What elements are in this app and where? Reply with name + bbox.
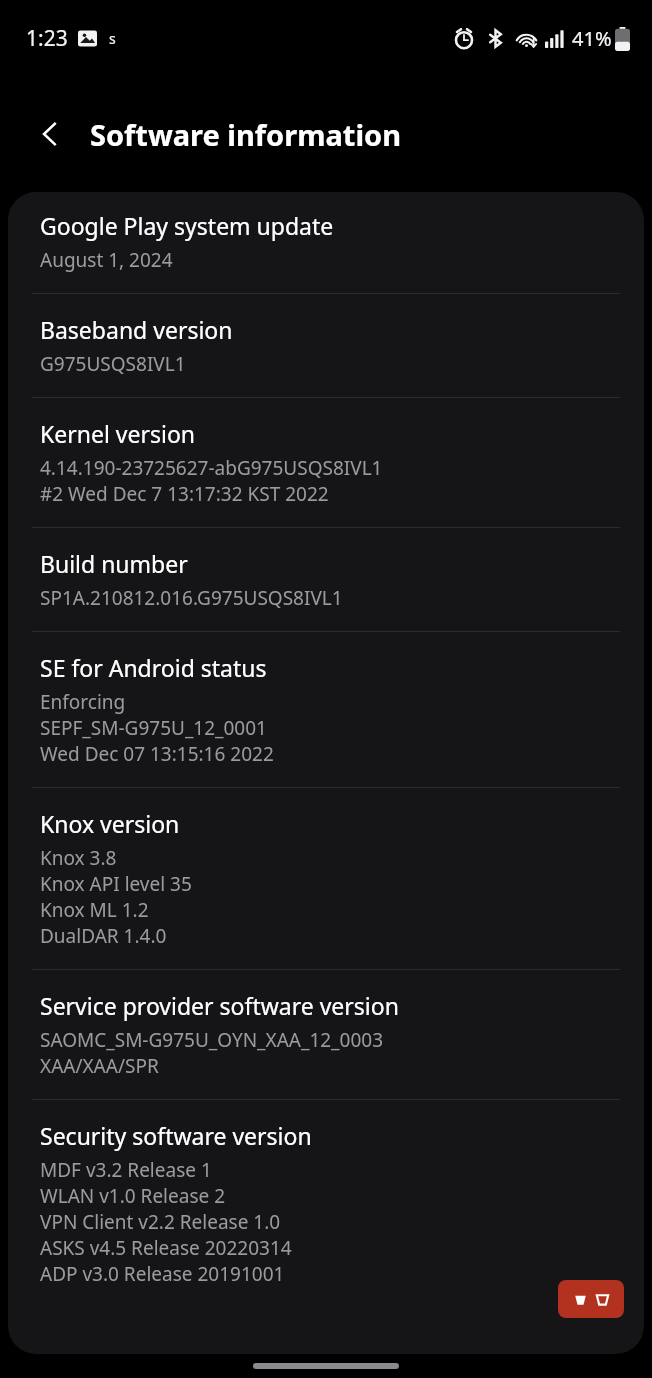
staticText: SAOMC_SM-G975U_OYN_XAA_12_0003 — [40, 1027, 384, 1053]
staticText: Software information — [90, 115, 402, 154]
button[interactable]: SE for Android status — [8, 632, 644, 787]
staticText: ASKS v4.5 Release 20220314 — [40, 1235, 292, 1261]
staticText: MDF v3.2 Release 1 — [40, 1157, 212, 1183]
staticText: Service provider software version — [40, 990, 399, 1021]
staticText: Wed Dec 07 13:15:16 2022 — [40, 741, 274, 767]
staticText: Google Play system update — [40, 210, 334, 241]
button[interactable]: Screen recorder controls — [558, 1280, 624, 1318]
button[interactable]: Security software version — [8, 1100, 644, 1307]
button[interactable]: Service provider software version — [8, 970, 644, 1099]
button[interactable]: Back — [22, 106, 78, 162]
staticText: SP1A.210812.016.G975USQS8IVL1 — [40, 585, 343, 611]
staticText: ADP v3.0 Release 20191001 — [40, 1261, 285, 1287]
button[interactable]: Google Play system update — [8, 192, 644, 293]
staticText: Kernel version — [40, 418, 196, 449]
button[interactable]: Baseband version — [8, 294, 644, 397]
staticText: Knox version — [40, 808, 180, 839]
staticText: s — [109, 29, 116, 48]
button[interactable]: Build number — [8, 528, 644, 631]
staticText: Knox 3.8 — [40, 845, 117, 871]
staticText: 1:23 — [26, 24, 68, 53]
staticText: VPN Client v2.2 Release 1.0 — [40, 1209, 281, 1235]
staticText: XAA/XAA/SPR — [40, 1053, 159, 1079]
staticText: 41% — [572, 25, 612, 52]
staticText: August 1, 2024 — [40, 247, 173, 273]
staticText: G975USQS8IVL1 — [40, 351, 186, 377]
button[interactable]: Kernel version — [8, 398, 644, 527]
staticText: SEPF_SM-G975U_12_0001 — [40, 715, 267, 741]
staticText: Enforcing — [40, 689, 126, 715]
staticText: Baseband version — [40, 314, 233, 345]
staticText: #2 Wed Dec 7 13:17:32 KST 2022 — [40, 481, 329, 507]
staticText: Build number — [40, 548, 188, 579]
button[interactable]: Knox version — [8, 788, 644, 969]
staticText: Knox ML 1.2 — [40, 897, 149, 923]
staticText: DualDAR 1.4.0 — [40, 923, 167, 949]
staticText: SE for Android status — [40, 652, 267, 683]
staticText: Knox API level 35 — [40, 871, 192, 897]
staticText: WLAN v1.0 Release 2 — [40, 1183, 226, 1209]
staticText: 4.14.190-23725627-abG975USQS8IVL1 — [40, 455, 383, 481]
staticText: Security software version — [40, 1120, 312, 1151]
